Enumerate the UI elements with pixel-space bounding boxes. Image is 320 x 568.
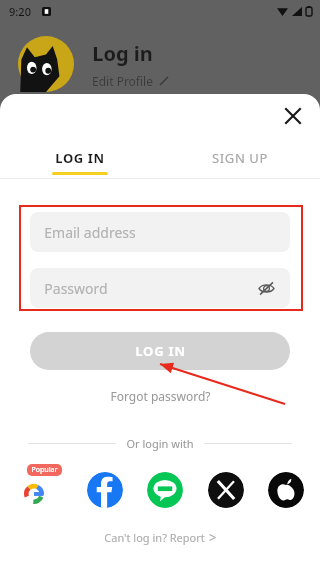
staticText: Edit Profile xyxy=(92,73,153,89)
button[interactable]: LOG IN xyxy=(30,332,290,370)
button[interactable]: Password xyxy=(30,268,290,308)
staticText: LOG IN xyxy=(55,149,105,167)
button[interactable]: Google xyxy=(16,476,52,512)
button[interactable]: Close xyxy=(276,99,310,133)
staticText: LOG IN xyxy=(135,342,186,360)
button[interactable]: Forgot password? xyxy=(106,384,215,408)
button[interactable]: Facebook xyxy=(87,472,123,508)
button[interactable]: X xyxy=(208,472,244,508)
staticText: Email address xyxy=(44,223,136,242)
staticText: 9:20 xyxy=(9,4,31,19)
button[interactable]: Email address xyxy=(30,212,290,252)
button[interactable]: Apple xyxy=(268,472,304,508)
staticText: Popular xyxy=(31,465,58,475)
staticText: Or login with xyxy=(126,436,194,451)
staticText: SIGN UP xyxy=(212,149,268,167)
staticText: Log in xyxy=(92,40,153,67)
button[interactable]: SIGN UP xyxy=(160,138,320,178)
button[interactable]: Can't log in? Report xyxy=(0,530,320,545)
button[interactable]: LINE xyxy=(147,472,183,508)
staticText: Can't log in? Report xyxy=(104,530,205,545)
staticText: Password xyxy=(44,279,108,298)
button[interactable]: Show password xyxy=(252,274,280,302)
button[interactable]: LOG IN xyxy=(0,138,160,178)
